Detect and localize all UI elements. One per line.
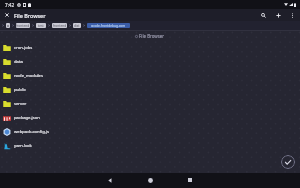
staticText: public xyxy=(14,87,26,93)
staticText: server xyxy=(14,101,27,107)
button[interactable]: Root folder xyxy=(6,23,10,28)
staticText: xcode-frontdebug.com xyxy=(91,24,126,28)
button[interactable]: public xyxy=(0,83,300,97)
staticText: 7:42 xyxy=(5,2,15,8)
button[interactable]: cron-jobs xyxy=(0,41,300,55)
button[interactable]: frontend xyxy=(16,23,30,28)
staticText: node_modules xyxy=(14,73,43,79)
button[interactable]: Home xyxy=(143,173,157,187)
button[interactable]: node_modules xyxy=(0,69,300,83)
button[interactable]: More options xyxy=(287,10,297,20)
button[interactable]: Close xyxy=(2,10,12,20)
staticText: cron-jobs xyxy=(14,45,33,51)
button[interactable]: test xyxy=(36,23,46,28)
button[interactable]: package.json xyxy=(0,111,300,125)
button[interactable]: yarn.lock xyxy=(0,139,300,153)
staticText: test xyxy=(38,24,44,28)
staticText: yarn.lock xyxy=(14,143,32,149)
button[interactable]: Search xyxy=(258,10,269,21)
staticText: dist xyxy=(74,24,80,28)
staticText: frontend xyxy=(53,24,67,28)
button[interactable]: Confirm selection xyxy=(281,155,295,169)
button[interactable]: xcode-frontdebug.com xyxy=(87,23,130,28)
button[interactable]: Back xyxy=(103,173,117,187)
button[interactable]: Add xyxy=(273,10,284,21)
staticText: webpack.config.js xyxy=(14,129,49,135)
staticText: frontend xyxy=(16,24,30,28)
button[interactable]: data xyxy=(0,55,300,69)
button[interactable]: Recents xyxy=(183,173,197,187)
staticText: package.json xyxy=(14,115,40,121)
staticText: data xyxy=(14,59,23,65)
button[interactable]: dist xyxy=(73,23,81,28)
button[interactable]: webpack.config.js xyxy=(0,125,300,139)
button[interactable]: frontend xyxy=(52,23,67,28)
staticText: File Browser xyxy=(139,33,165,39)
button[interactable]: server xyxy=(0,97,300,111)
staticText: File Browser xyxy=(14,12,46,19)
